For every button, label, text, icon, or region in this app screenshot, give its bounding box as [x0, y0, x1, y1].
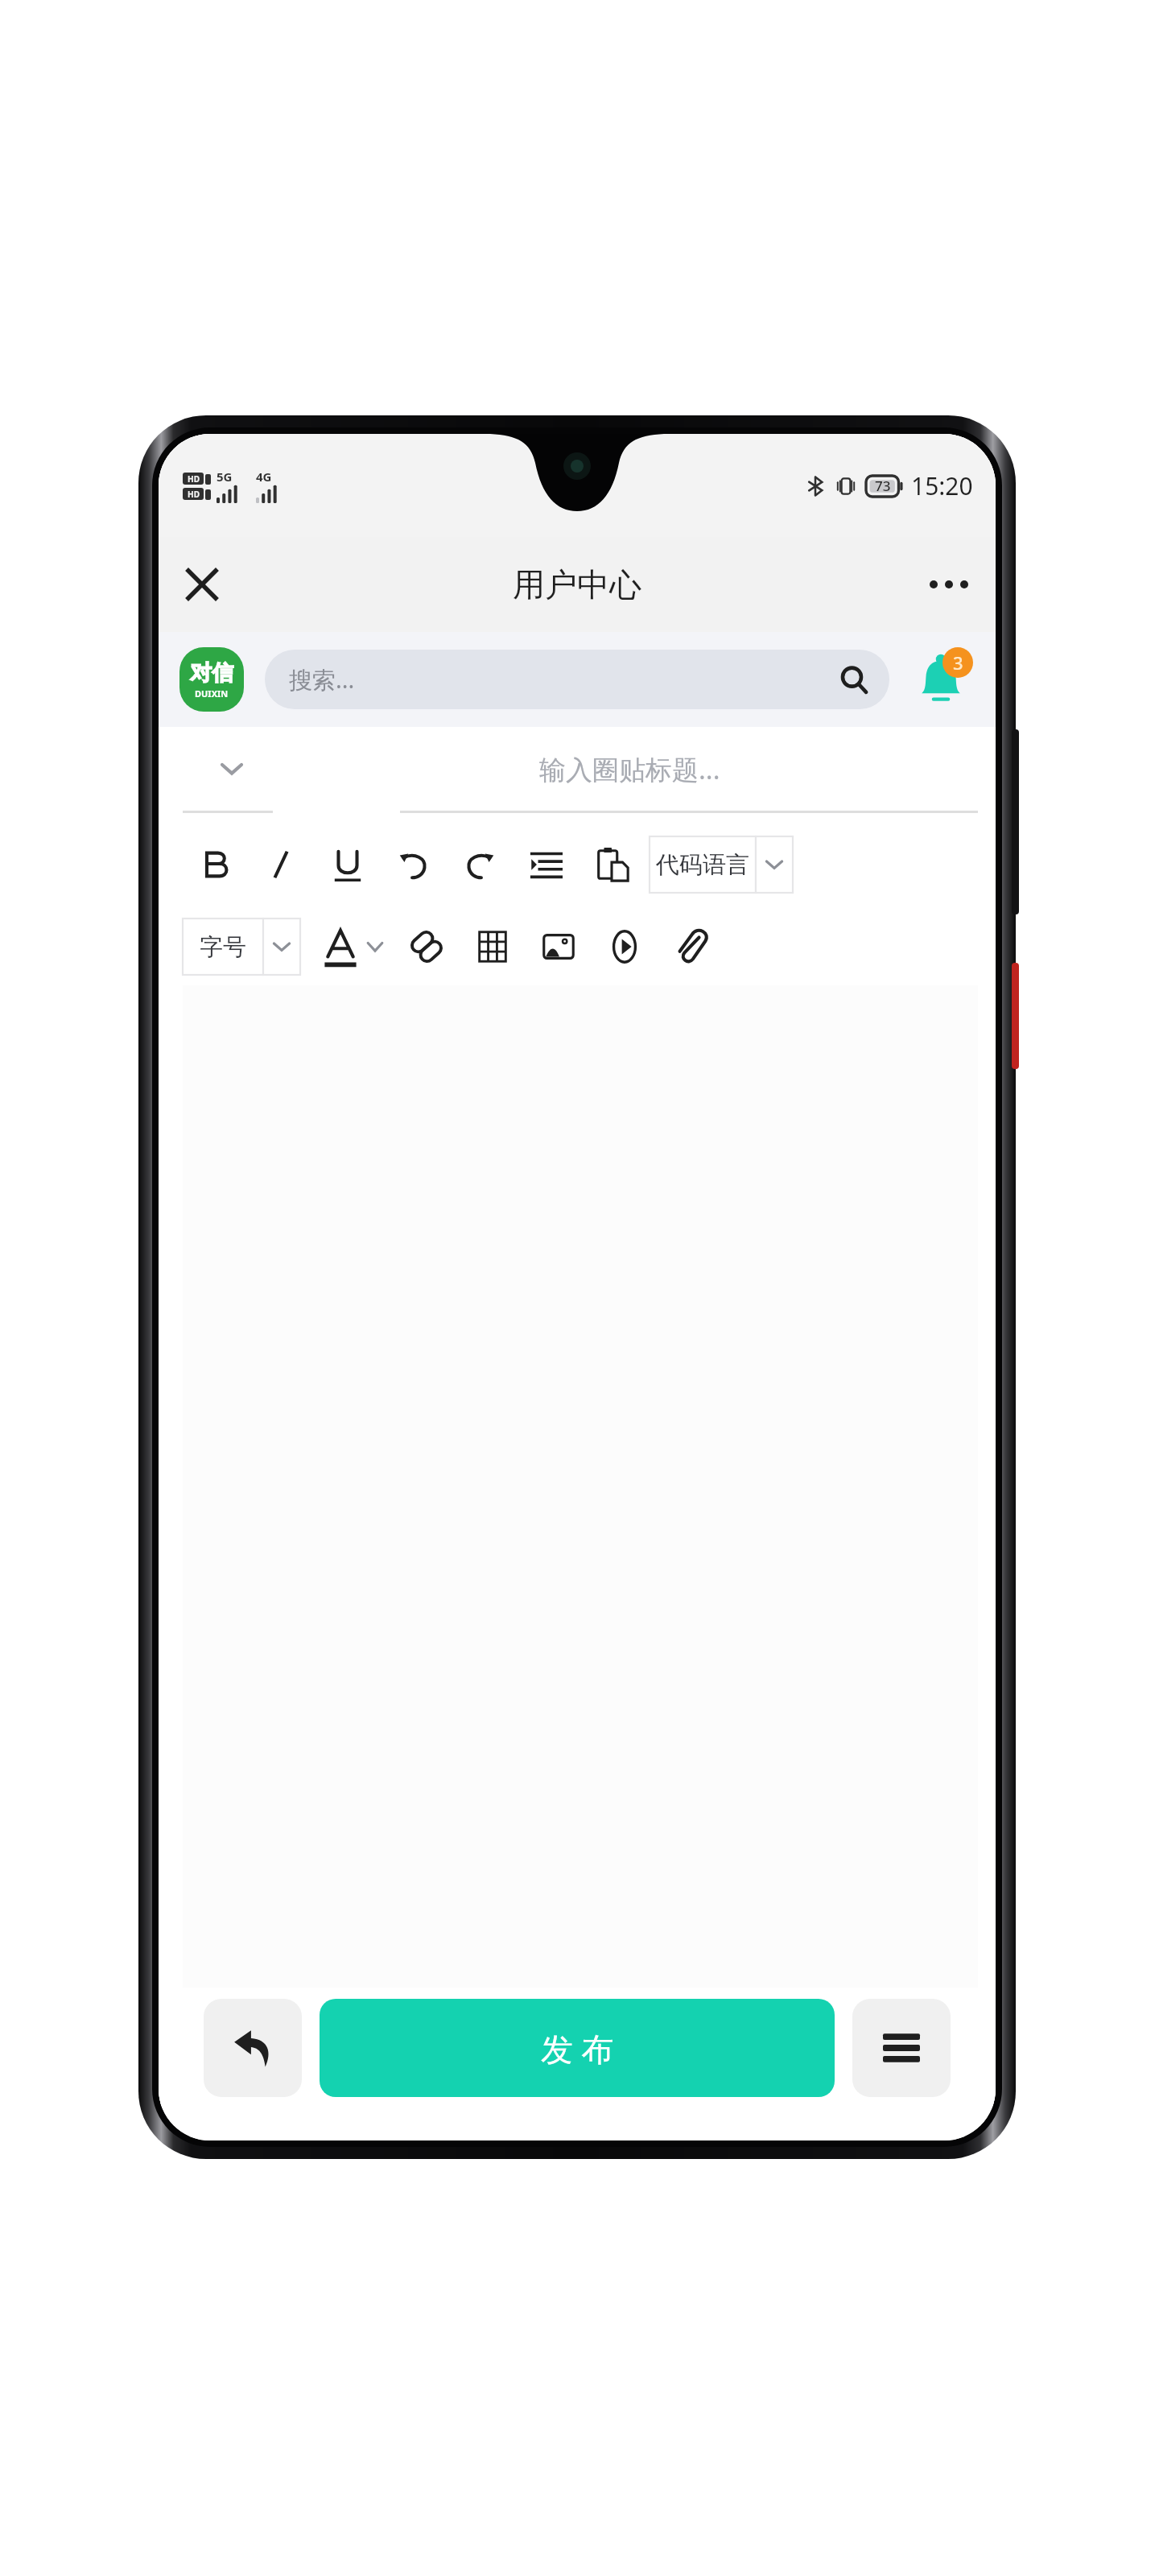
button[interactable]: Bold [183, 834, 249, 895]
staticText: 字号 [200, 932, 246, 962]
staticText: 搜索... [289, 663, 839, 696]
staticText: 5G [217, 469, 233, 485]
button[interactable]: 发 布 [320, 1999, 835, 2097]
button[interactable]: Paste [579, 834, 645, 895]
button[interactable]: Redo [447, 834, 513, 895]
staticText: 73 [875, 477, 891, 495]
button[interactable]: Notifications, 3 unread [907, 646, 975, 713]
button[interactable]: 代码语言 [650, 836, 793, 893]
button[interactable]: 字号 [183, 919, 300, 975]
button[interactable]: Insert table [460, 916, 526, 977]
staticText: 发 布 [541, 2026, 614, 2070]
staticText: DUIXIN [195, 687, 229, 700]
button[interactable]: DUIXIN logo [179, 647, 244, 712]
staticText: 代码语言 [656, 850, 749, 880]
button[interactable]: 输入圈贴标题... [281, 727, 978, 811]
staticText: HD [188, 473, 200, 485]
staticText: 4G [256, 469, 272, 485]
staticText: 输入圈贴标题... [539, 751, 720, 787]
button[interactable]: Close [168, 551, 236, 618]
button[interactable]: Insert image [526, 916, 592, 977]
staticText: HD [188, 489, 200, 500]
staticText: 用户中心 [513, 564, 641, 605]
button[interactable]: More options [915, 551, 983, 618]
button[interactable]: Underline [315, 834, 381, 895]
staticText: 15:20 [911, 469, 973, 502]
button[interactable]: Menu [852, 1999, 951, 2097]
button[interactable]: Indent [513, 834, 579, 895]
staticText: 3 [953, 650, 963, 675]
button[interactable]: 搜索... [265, 650, 889, 709]
button[interactable]: Attach file [658, 916, 724, 977]
staticText: 对信 [190, 659, 233, 687]
button[interactable]: Text color [318, 924, 384, 969]
button[interactable]: Insert video [592, 916, 658, 977]
button[interactable]: Back [204, 1999, 302, 2097]
button[interactable]: Insert link [394, 916, 460, 977]
button[interactable]: Undo [381, 834, 447, 895]
button[interactable]: Italic [249, 834, 315, 895]
button[interactable]: Select circle [183, 727, 281, 811]
